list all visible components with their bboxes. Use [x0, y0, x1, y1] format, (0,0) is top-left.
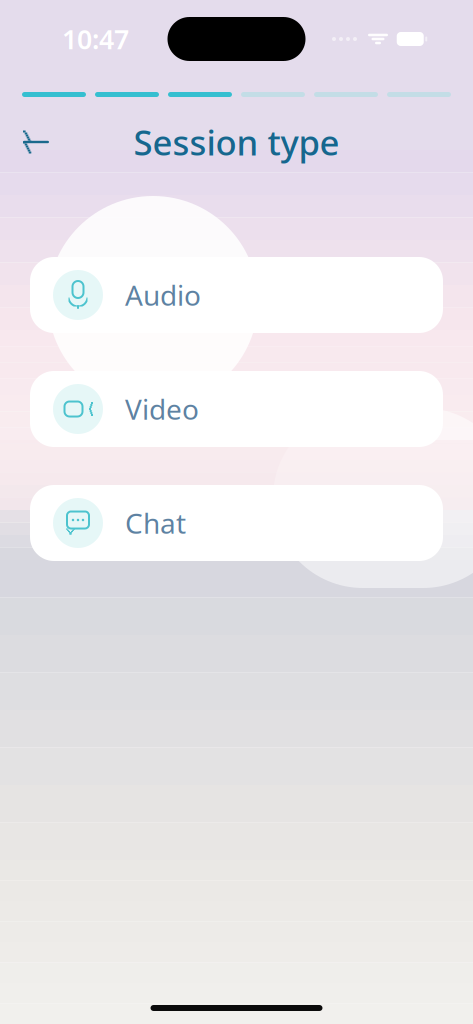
button[interactable]: Back: [7, 115, 65, 169]
staticText: Audio: [125, 276, 201, 314]
staticText: Video: [125, 390, 199, 428]
staticText: Chat: [125, 504, 186, 542]
button[interactable]: Chat: [30, 485, 443, 561]
button[interactable]: Video: [30, 371, 443, 447]
staticText: 10:47: [62, 21, 129, 57]
staticText: Session type: [133, 119, 339, 165]
button[interactable]: Audio: [30, 257, 443, 333]
